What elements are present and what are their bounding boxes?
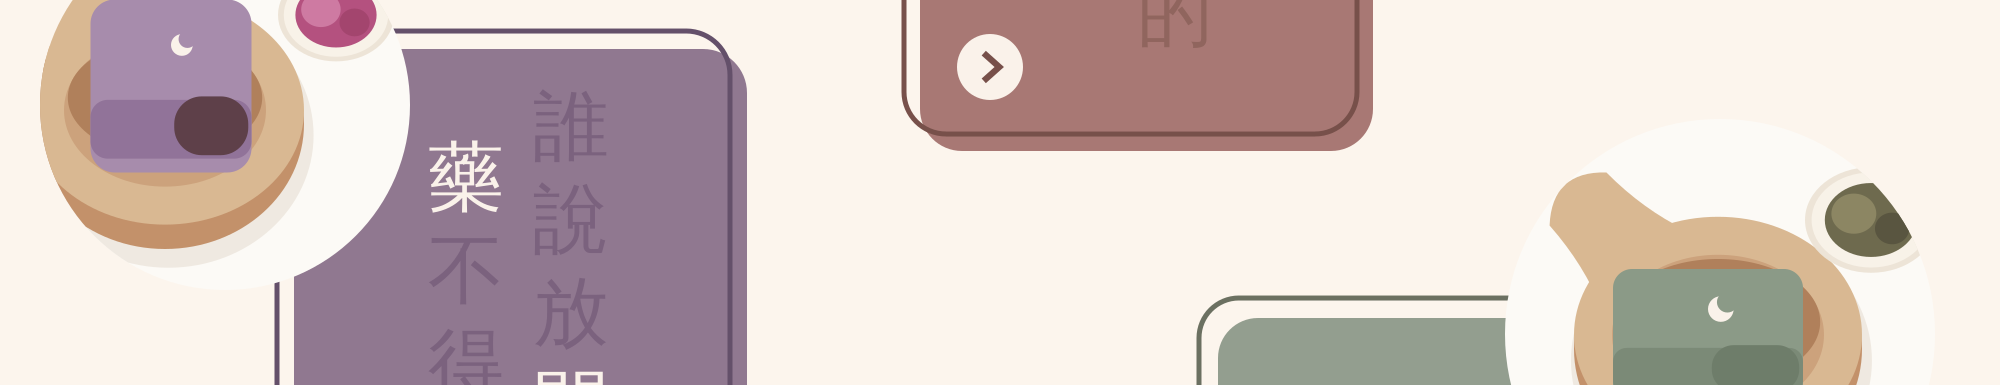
button[interactable]: 藥 [294,49,747,385]
staticText: 說 [533,173,609,267]
button[interactable]: 的 [920,0,1373,151]
staticText: 開 [533,359,609,385]
staticText: 木 [1453,381,1529,385]
staticText: 的 [1137,0,1213,60]
staticText: 得 [428,317,504,385]
staticText: 放 [533,266,609,360]
staticText: 不 [428,224,504,318]
button[interactable]: 草 [1218,318,1671,385]
button[interactable]: Read the article [957,34,1023,100]
staticText: 藥 [428,131,504,225]
staticText: 誰 [533,80,609,174]
